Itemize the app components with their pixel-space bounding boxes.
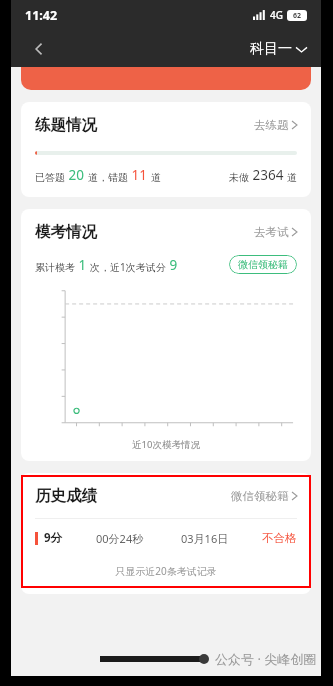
staticText: 9分 bbox=[44, 530, 63, 546]
button[interactable]: 返回 bbox=[25, 35, 53, 63]
staticText: 微信领秘籍 bbox=[238, 258, 288, 271]
staticText: 道 bbox=[287, 171, 297, 184]
button[interactable]: 微信领秘籍 bbox=[231, 489, 297, 503]
staticText: 11 bbox=[128, 166, 151, 184]
staticText: 去练题 bbox=[254, 118, 289, 132]
button[interactable]: 微信领秘籍 bbox=[229, 255, 297, 274]
staticText: 模考情况 bbox=[35, 222, 97, 242]
staticText: 03月16日 bbox=[181, 531, 229, 546]
staticText: 不合格 bbox=[262, 531, 297, 545]
button[interactable]: 去考试 bbox=[254, 225, 297, 239]
staticText: 微信领秘籍 bbox=[231, 489, 289, 503]
staticText: 错题 bbox=[108, 171, 128, 184]
staticText: 11:42 bbox=[25, 7, 58, 24]
staticText: 历史成绩 bbox=[35, 486, 97, 506]
staticText: 1 bbox=[75, 256, 90, 274]
staticText: 00分24秒 bbox=[96, 531, 144, 546]
staticText: 道 bbox=[151, 171, 161, 184]
button[interactable]: 去练题 bbox=[254, 118, 297, 132]
button[interactable]: 9分 bbox=[35, 530, 297, 546]
button[interactable]: 练题情况 bbox=[21, 102, 311, 197]
staticText: 2364 bbox=[249, 166, 287, 184]
staticText: 只显示近20条考试记录 bbox=[35, 564, 297, 578]
staticText: 去考试 bbox=[254, 225, 289, 239]
staticText: 近10次模考情况 bbox=[35, 438, 297, 451]
staticText: 20 bbox=[65, 166, 88, 184]
staticText: 9 bbox=[166, 256, 178, 274]
button[interactable]: 科目一 bbox=[250, 40, 307, 58]
staticText: 62 bbox=[293, 11, 302, 21]
staticText: 科目一 bbox=[250, 40, 292, 58]
staticText: 道， bbox=[88, 171, 108, 184]
staticText: 4G bbox=[270, 8, 283, 22]
staticText: 次，近1次考试分 bbox=[90, 260, 166, 274]
staticText: 累计模考 bbox=[35, 261, 75, 274]
staticText: 练题情况 bbox=[35, 115, 97, 135]
staticText: 已答题 bbox=[35, 171, 65, 184]
staticText: 未做 bbox=[229, 171, 249, 184]
staticText: 公众号 · 尖峰创圈 bbox=[215, 650, 317, 668]
